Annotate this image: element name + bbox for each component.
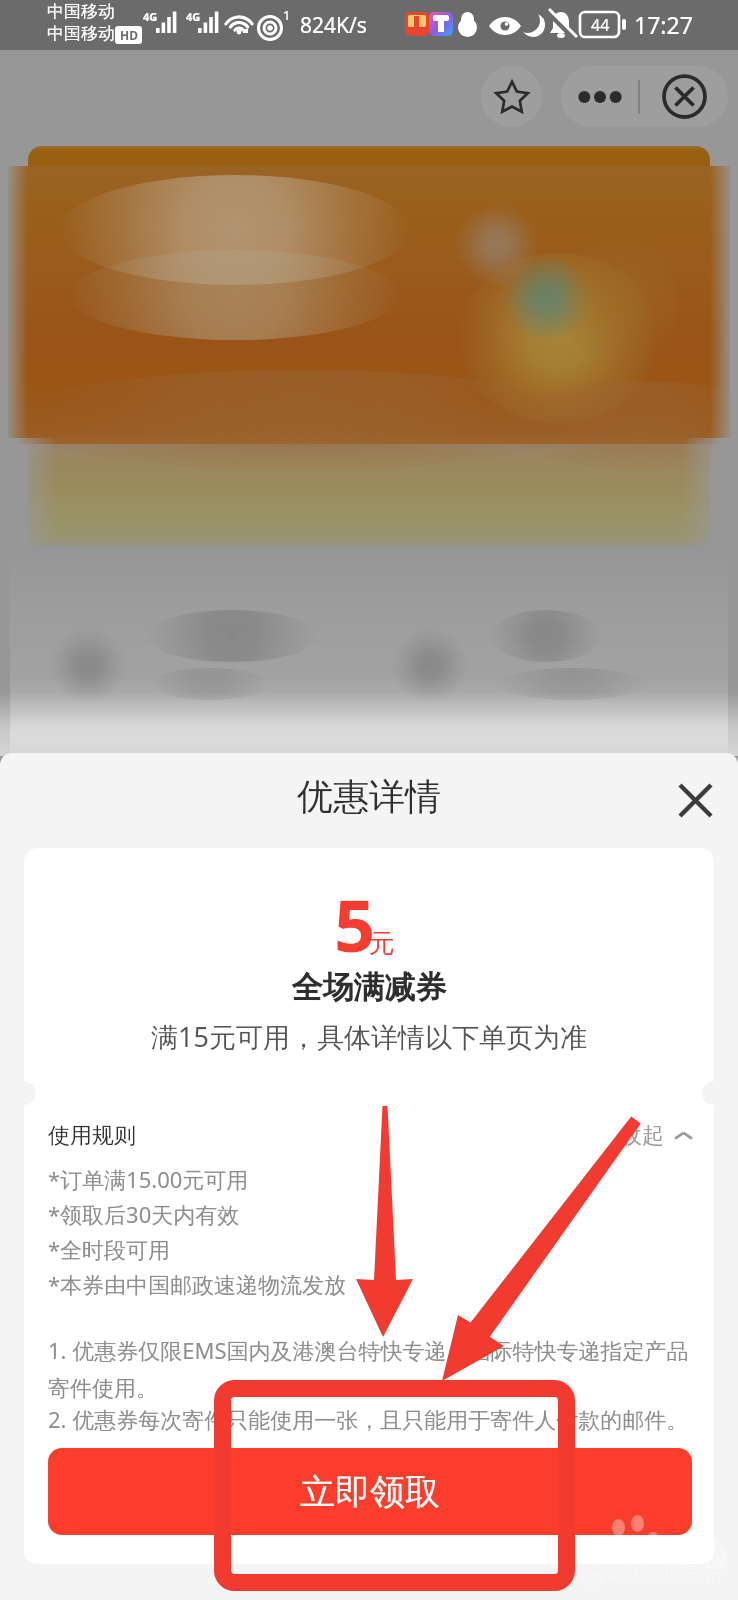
staticText: HD [120, 27, 138, 43]
staticText: 元 [369, 927, 395, 960]
staticText: 17:27 [634, 9, 693, 40]
staticText: 全场满减券 [24, 968, 714, 1007]
button[interactable]: More options [561, 66, 638, 127]
staticText: 1 [283, 6, 291, 24]
staticText: 中国移动 [47, 23, 115, 44]
staticText: 收起 [620, 1122, 664, 1150]
staticText: 1. 优惠券仅限EMS国内及港澳台特快专递、国际特快专递指定产品寄件使用。 [48, 1335, 696, 1403]
staticText: *订单满15.00元可用 [48, 1164, 249, 1199]
staticText: 2. 优惠券每次寄件只能使用一张，且只能用于寄件人付款的邮件。 [48, 1404, 689, 1434]
button[interactable]: 立即领取 [48, 1448, 692, 1535]
staticText: *全时段可用 [48, 1234, 171, 1269]
staticText: *领取后30天内有效 [48, 1199, 240, 1234]
staticText: 4G [186, 9, 201, 24]
button[interactable]: Close [663, 768, 727, 832]
staticText: 44 [591, 14, 610, 36]
staticText: 824K/s [300, 11, 367, 40]
staticText: 立即领取 [300, 1470, 440, 1514]
button[interactable]: Close page [640, 66, 728, 127]
button[interactable]: 收起 [620, 1122, 692, 1150]
staticText: 5 [334, 875, 376, 973]
staticText: *本券由中国邮政速递物流发放 [48, 1269, 347, 1304]
staticText: 4G [143, 9, 158, 24]
staticText: 满15元可用，具体详情以下单页为准 [24, 1018, 714, 1055]
staticText: 优惠详情 [0, 774, 738, 819]
staticText: 中国移动 [47, 1, 115, 22]
staticText: 使用规则 [48, 1122, 136, 1150]
staticText: Baidu 经验 [566, 1533, 730, 1577]
button[interactable]: Favorite [481, 66, 542, 127]
staticText: jingyan.baidu.com [566, 1563, 722, 1588]
